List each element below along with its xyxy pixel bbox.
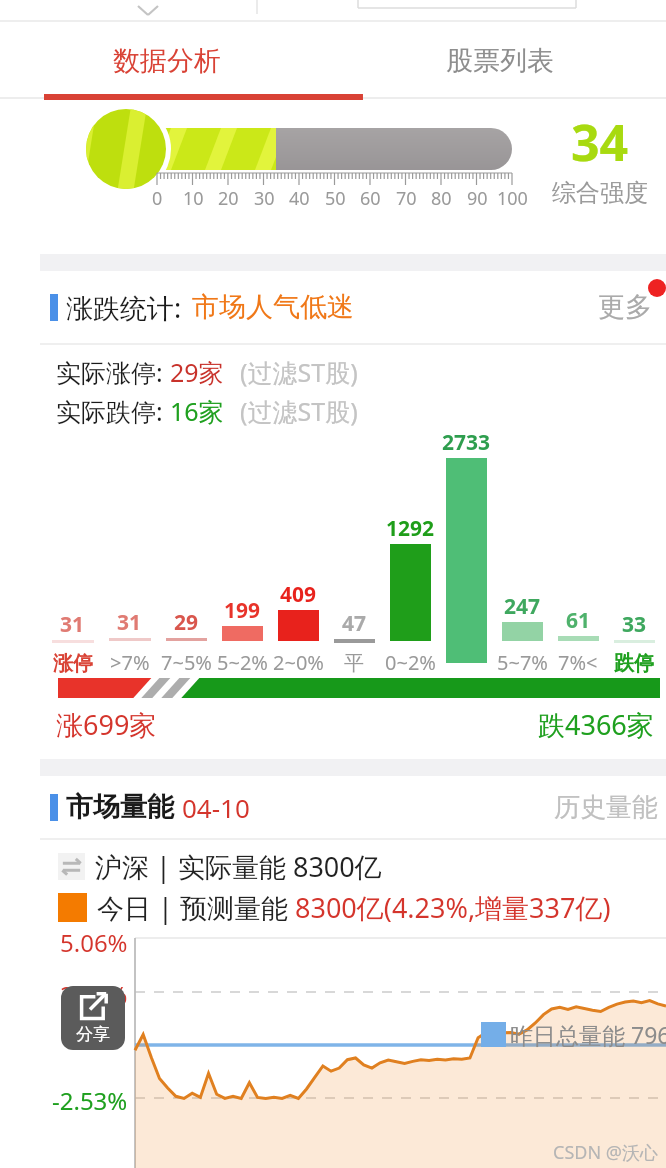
staticText: 2733 <box>442 428 491 457</box>
staticText: 29 <box>174 608 199 637</box>
staticText: (过滤ST股) <box>240 355 358 389</box>
staticText: 199 <box>224 596 261 625</box>
staticText: 综合强度 <box>552 178 648 208</box>
staticText: 70 <box>396 186 417 211</box>
staticText: 61 <box>566 606 591 635</box>
staticText: 实际跌停: <box>56 394 170 428</box>
button[interactable]: 股票列表 <box>333 22 666 100</box>
staticText: 分享 <box>76 1024 110 1045</box>
button[interactable]: Share <box>61 986 125 1050</box>
staticText: 跌停 <box>614 651 654 676</box>
staticText: 409 <box>280 580 317 609</box>
staticText: 5.06% <box>60 926 128 959</box>
staticText: 今日 | 预测量能 <box>97 889 295 926</box>
staticText: 更多 <box>598 290 652 324</box>
staticText: 8300亿(4.23%,增量337亿) <box>295 889 611 926</box>
staticText: 100 <box>497 186 528 211</box>
staticText: 47 <box>342 609 367 638</box>
staticText: 数据分析 <box>113 44 221 78</box>
staticText: 20 <box>218 186 239 211</box>
button[interactable]: 历史量能 <box>554 791 658 824</box>
staticText: 7~5% <box>161 649 212 676</box>
staticText: 60 <box>360 186 381 211</box>
staticText: 0~2% <box>385 649 436 676</box>
staticText: 34 <box>571 108 629 176</box>
staticText: 实际涨停: <box>56 355 170 389</box>
staticText: 5~2% <box>217 649 268 676</box>
staticText: 30 <box>254 186 275 211</box>
button[interactable]: 数据分析 <box>0 22 333 100</box>
staticText: >7% <box>110 649 150 676</box>
staticText: 2~0% <box>273 649 324 676</box>
staticText: 29家 <box>170 355 224 389</box>
staticText: 1292 <box>386 514 435 543</box>
staticText: 市场人气低迷 <box>192 290 354 324</box>
staticText: 涨停 <box>53 651 93 676</box>
staticText: 历史量能 <box>554 791 658 824</box>
staticText: 247 <box>504 592 541 621</box>
staticText: 5~7% <box>497 649 548 676</box>
staticText: CSDN @沃心 <box>553 1140 658 1165</box>
other: Exchange <box>58 853 85 880</box>
staticText: 昨日总量能 7963亿 <box>510 1019 666 1050</box>
staticText: 33 <box>622 610 647 639</box>
staticText: 跌4366家 <box>538 706 654 743</box>
staticText: (过滤ST股) <box>240 394 358 428</box>
staticText: 2.53% <box>60 978 128 1011</box>
staticText: 0 <box>152 186 163 211</box>
staticText: 7%< <box>558 649 598 676</box>
button[interactable]: 更多 <box>598 290 652 324</box>
staticText: -2.53% <box>52 1084 128 1117</box>
staticText: 涨跌统计: <box>66 289 182 326</box>
staticText: 10 <box>183 186 204 211</box>
staticText: 80 <box>431 186 452 211</box>
staticText: 04-10 <box>182 790 250 825</box>
staticText: 31 <box>117 608 142 637</box>
staticText: 31 <box>60 610 85 639</box>
staticText: 50 <box>325 186 346 211</box>
staticText: 16家 <box>170 394 224 428</box>
staticText: 90 <box>467 186 488 211</box>
staticText: 沪深 | 实际量能 8300亿 <box>95 848 382 885</box>
staticText: 市场量能 <box>66 790 174 824</box>
staticText: 40 <box>289 186 310 211</box>
staticText: 涨699家 <box>56 706 157 743</box>
staticText: 平 <box>344 651 364 676</box>
staticText: 股票列表 <box>446 44 554 78</box>
